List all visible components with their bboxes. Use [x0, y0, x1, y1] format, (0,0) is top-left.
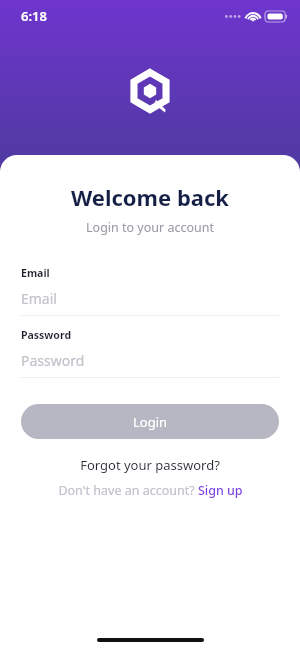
- button[interactable]: Login: [21, 404, 279, 439]
- staticText: 6:18: [21, 7, 47, 25]
- button[interactable]: Don't have an account? Sign up: [0, 482, 300, 499]
- staticText: Login: [133, 413, 168, 431]
- other: App logo: [127, 68, 173, 114]
- staticText: Email: [21, 266, 50, 280]
- button[interactable]: Forgot your password?: [0, 456, 300, 474]
- staticText: Password: [21, 328, 72, 342]
- staticText: Welcome back: [0, 182, 300, 212]
- button[interactable]: Password: [21, 328, 279, 378]
- staticText: Email: [21, 289, 57, 308]
- button[interactable]: Email: [21, 266, 279, 316]
- staticText: Password: [21, 351, 85, 370]
- staticText: Don't have an account? Sign up: [58, 482, 243, 499]
- staticText: Login to your account: [0, 219, 300, 236]
- staticText: Forgot your password?: [80, 456, 220, 474]
